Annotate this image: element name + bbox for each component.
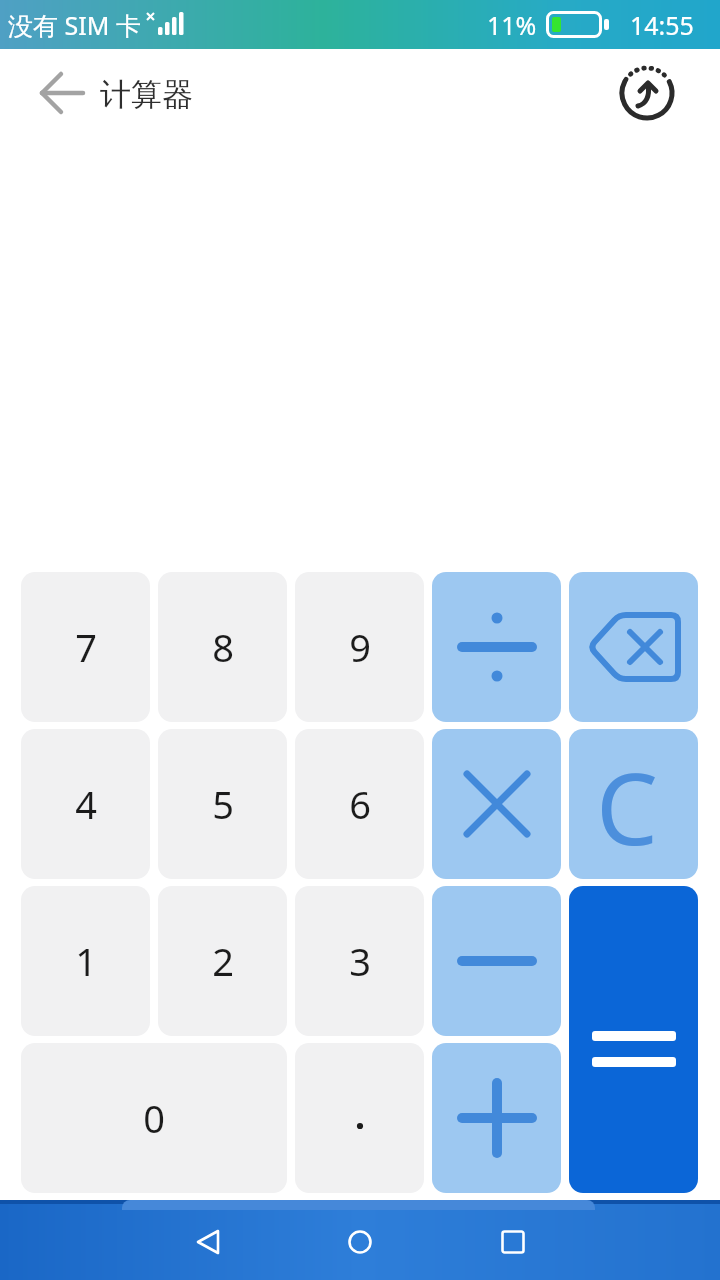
staticText: 7 xyxy=(75,621,97,673)
staticText: 14:55 xyxy=(630,8,694,42)
button[interactable] xyxy=(569,886,698,1193)
staticText: 5 xyxy=(212,778,234,830)
staticText: C xyxy=(596,740,658,873)
button[interactable]: 5 xyxy=(158,729,287,879)
staticText: 8 xyxy=(212,621,234,673)
button[interactable] xyxy=(432,572,561,722)
staticText: 2 xyxy=(212,935,234,987)
button[interactable] xyxy=(432,886,561,1036)
button[interactable] xyxy=(432,729,561,879)
staticText: 0 xyxy=(143,1092,165,1144)
button[interactable] xyxy=(477,1206,549,1278)
button[interactable] xyxy=(612,58,682,128)
button[interactable] xyxy=(295,1043,424,1193)
button[interactable]: 7 xyxy=(21,572,150,722)
staticText: 计算器 xyxy=(100,75,193,114)
button[interactable]: 1 xyxy=(21,886,150,1036)
button[interactable] xyxy=(569,572,698,722)
staticText: 1 xyxy=(75,935,97,987)
button[interactable]: 2 xyxy=(158,886,287,1036)
button[interactable] xyxy=(26,58,98,128)
staticText: 3 xyxy=(349,935,371,987)
button[interactable]: 6 xyxy=(295,729,424,879)
button[interactable] xyxy=(432,1043,561,1193)
button[interactable]: 9 xyxy=(295,572,424,722)
staticText: 6 xyxy=(349,778,371,830)
staticText: 11% xyxy=(487,8,537,42)
button[interactable]: 0 xyxy=(21,1043,287,1193)
staticText: 9 xyxy=(349,621,371,673)
button[interactable] xyxy=(172,1206,244,1278)
staticText: 没有 SIM 卡 xyxy=(8,8,141,42)
staticText: 4 xyxy=(75,778,97,830)
button[interactable]: C xyxy=(569,729,698,879)
button[interactable] xyxy=(324,1206,396,1278)
button[interactable]: 3 xyxy=(295,886,424,1036)
button[interactable]: 4 xyxy=(21,729,150,879)
button[interactable]: 8 xyxy=(158,572,287,722)
